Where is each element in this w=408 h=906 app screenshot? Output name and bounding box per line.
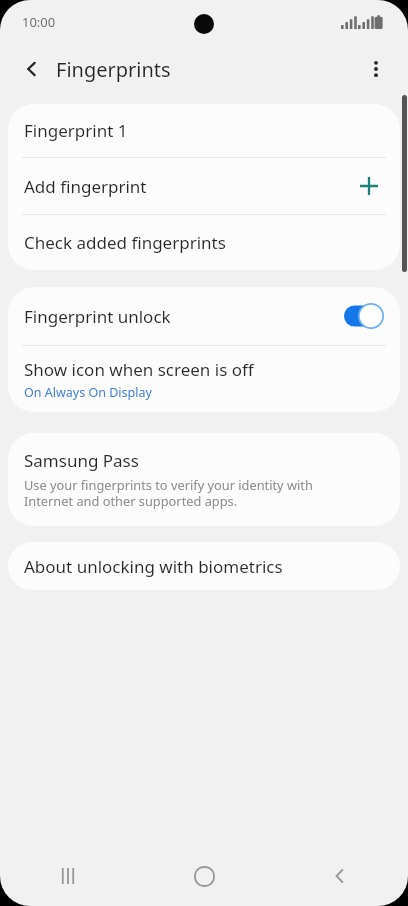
staticText: Fingerprint 1 (24, 119, 128, 142)
button[interactable]: Home (136, 846, 272, 906)
button[interactable]: Show icon when screen is off (8, 346, 400, 412)
button[interactable]: More options (354, 47, 398, 91)
button[interactable]: Fingerprint 1 (8, 104, 400, 157)
button[interactable]: Recent apps (0, 846, 136, 906)
button[interactable]: Add fingerprint (8, 158, 400, 214)
staticText: 10:00 (22, 13, 56, 31)
staticText: About unlocking with biometrics (24, 555, 283, 578)
staticText: Add fingerprint (24, 175, 360, 198)
staticText: Show icon when screen is off (24, 358, 254, 381)
button[interactable]: About unlocking with biometrics (8, 542, 400, 590)
button[interactable]: Check added fingerprints (8, 215, 400, 270)
staticText: Use your fingerprints to verify your ide… (24, 476, 313, 510)
staticText: Fingerprint unlock (24, 305, 344, 328)
button[interactable]: Samsung Pass (8, 433, 400, 526)
staticText: On Always On Display (24, 384, 152, 401)
button[interactable]: Fingerprint unlock (8, 287, 400, 345)
staticText: Check added fingerprints (24, 231, 226, 254)
staticText: Fingerprints (56, 56, 171, 83)
staticText: Samsung Pass (24, 449, 139, 472)
button[interactable]: Back (272, 846, 408, 906)
button[interactable]: Back (10, 47, 54, 91)
